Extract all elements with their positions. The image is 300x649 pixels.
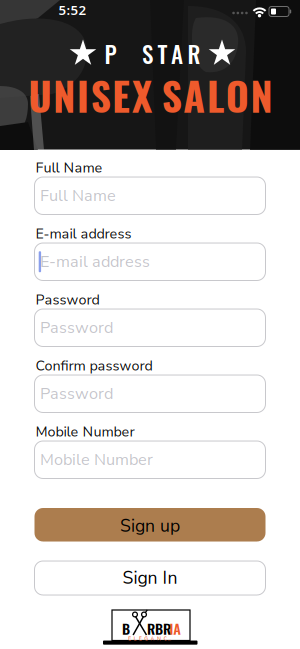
staticText: Full Name <box>35 158 102 177</box>
staticText: O <box>226 66 249 124</box>
staticText: P STAR <box>104 36 200 71</box>
staticText: ELEGANCE <box>128 635 172 642</box>
button[interactable]: Password <box>34 375 265 412</box>
button[interactable]: Sign up <box>34 508 265 541</box>
staticText: Full Name <box>40 185 116 207</box>
staticText: S <box>91 66 111 124</box>
staticText: 5:52 <box>58 1 86 19</box>
staticText: X <box>132 66 152 124</box>
button[interactable]: Password <box>34 309 265 346</box>
button[interactable]: Mobile Number <box>34 441 265 478</box>
staticText: A <box>183 66 205 124</box>
staticText: Password <box>35 290 99 309</box>
staticText: Password <box>40 383 113 405</box>
staticText: IA <box>169 618 181 639</box>
staticText: S <box>162 66 182 124</box>
staticText: I <box>77 66 89 124</box>
staticText: Sign up <box>120 514 180 538</box>
staticText: Mobile Number <box>35 422 134 441</box>
staticText: L <box>207 66 224 124</box>
button[interactable]: Full Name <box>34 177 265 214</box>
staticText: U <box>29 66 52 124</box>
staticText: Mobile Number <box>40 449 153 471</box>
button[interactable]: Sign In <box>34 561 265 595</box>
staticText: N <box>53 66 75 124</box>
staticText: Sign In <box>122 566 177 590</box>
staticText: Confirm password <box>35 356 152 375</box>
staticText: RBR <box>147 618 171 639</box>
staticText: N <box>250 66 272 124</box>
staticText: E-mail address <box>40 251 150 273</box>
staticText: E-mail address <box>35 224 131 243</box>
staticText: B <box>122 618 130 639</box>
button[interactable]: E-mail address <box>34 243 265 280</box>
staticText: Password <box>40 317 113 339</box>
staticText: E <box>112 66 130 124</box>
